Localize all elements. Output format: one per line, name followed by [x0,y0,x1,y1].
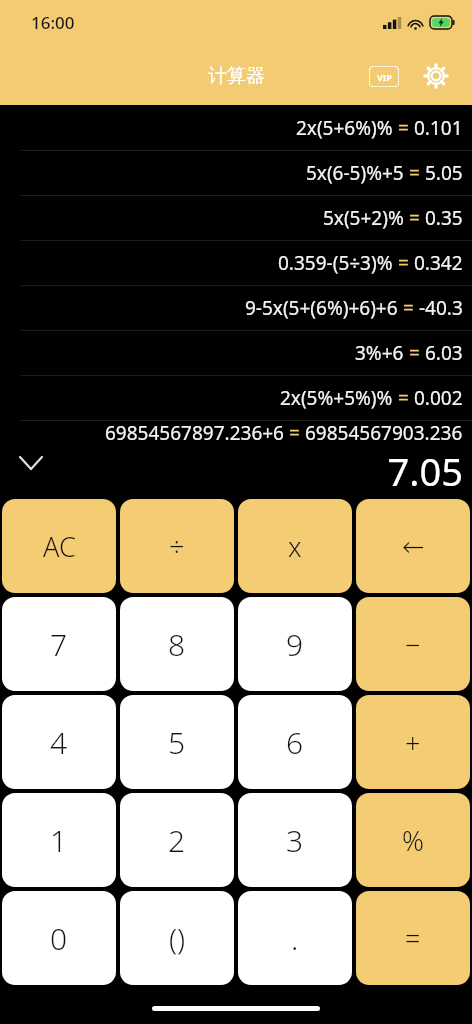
staticText: = [393,385,414,411]
staticText: x [288,528,302,565]
button[interactable]: + [356,695,470,789]
staticText: 0.342 [414,250,463,276]
staticText: 0.002 [414,385,463,411]
staticText: 5.05 [425,160,463,186]
staticText: = [404,205,425,231]
staticText: VIP [377,71,392,83]
staticText: 0.101 [414,115,463,141]
button[interactable]: () [120,891,234,985]
button[interactable]: % [356,793,470,887]
staticText: 2 [168,820,186,861]
button[interactable]: . [238,891,352,985]
button[interactable]: 9-5x(5+(6%)+6)+6 [0,285,472,330]
button[interactable]: x [238,499,352,593]
button[interactable]: AC [2,499,116,593]
staticText: 5x(6-5)%+5 [306,160,404,186]
staticText: = [404,160,425,186]
staticText: 2x(5+6%)% [296,115,393,141]
staticText: 9 [286,624,304,665]
staticText: 9-5x(5+(6%)+6)+6 [245,295,398,321]
button[interactable]: Collapse history [14,446,48,480]
staticText: 7.05 [387,445,463,497]
staticText: 16:00 [31,11,75,34]
staticText: 计算器 [208,64,265,88]
button[interactable]: 3 [238,793,352,887]
staticText: () [169,919,186,958]
staticText: 3 [286,820,304,861]
staticText: 1 [50,820,68,861]
button[interactable]: 6 [238,695,352,789]
button[interactable]: = [356,891,470,985]
staticText: = [404,340,425,366]
button[interactable]: 0.359-(5÷3)% [0,240,472,285]
staticText: 2x(5%+5%)% [280,385,393,411]
staticText: + [405,724,421,761]
button[interactable]: 1 [2,793,116,887]
staticText: 5x(5+2)% [323,205,404,231]
staticText: 6 [286,722,304,763]
staticText: 69854567897.236+6 [105,420,284,441]
button[interactable]: 7 [2,597,116,691]
staticText: % [402,822,424,859]
button[interactable]: 5x(6-5)%+5 [0,150,472,195]
staticText: = [405,920,421,957]
staticText: 5 [168,722,186,763]
button[interactable]: 2x(5%+5%)% [0,375,472,420]
staticText: AC [43,528,76,565]
staticText: -40.3 [419,295,463,321]
staticText: ← [402,531,425,562]
staticText: ÷ [169,528,185,565]
staticText: 8 [168,624,186,665]
staticText: . [291,918,299,959]
staticText: = [284,420,305,441]
button[interactable]: − [356,597,470,691]
button[interactable]: 5x(5+2)% [0,195,472,240]
button[interactable]: 2 [120,793,234,887]
staticText: = [393,115,414,141]
button[interactable]: 4 [2,695,116,789]
staticText: 6.03 [425,340,463,366]
staticText: = [398,295,419,321]
button[interactable]: 3%+6 [0,330,472,375]
button[interactable]: 8 [120,597,234,691]
staticText: 69854567903.236 [305,420,463,441]
button[interactable]: 0 [2,891,116,985]
button[interactable]: 9 [238,597,352,691]
button[interactable]: ÷ [120,499,234,593]
staticText: 3%+6 [355,340,404,366]
button[interactable]: 2x(5+6%)% [0,105,472,150]
button[interactable]: VIP [362,54,406,98]
button[interactable]: 69854567897.236+6 [0,420,472,441]
staticText: 0 [50,918,68,959]
staticText: 4 [50,722,68,763]
button[interactable]: 5 [120,695,234,789]
staticText: 7 [50,624,68,665]
button[interactable]: ← [356,499,470,593]
staticText: − [405,626,421,663]
staticText: 0.359-(5÷3)% [278,250,393,276]
button[interactable]: Settings [414,54,458,98]
staticText: = [393,250,414,276]
staticText: 0.35 [425,205,463,231]
